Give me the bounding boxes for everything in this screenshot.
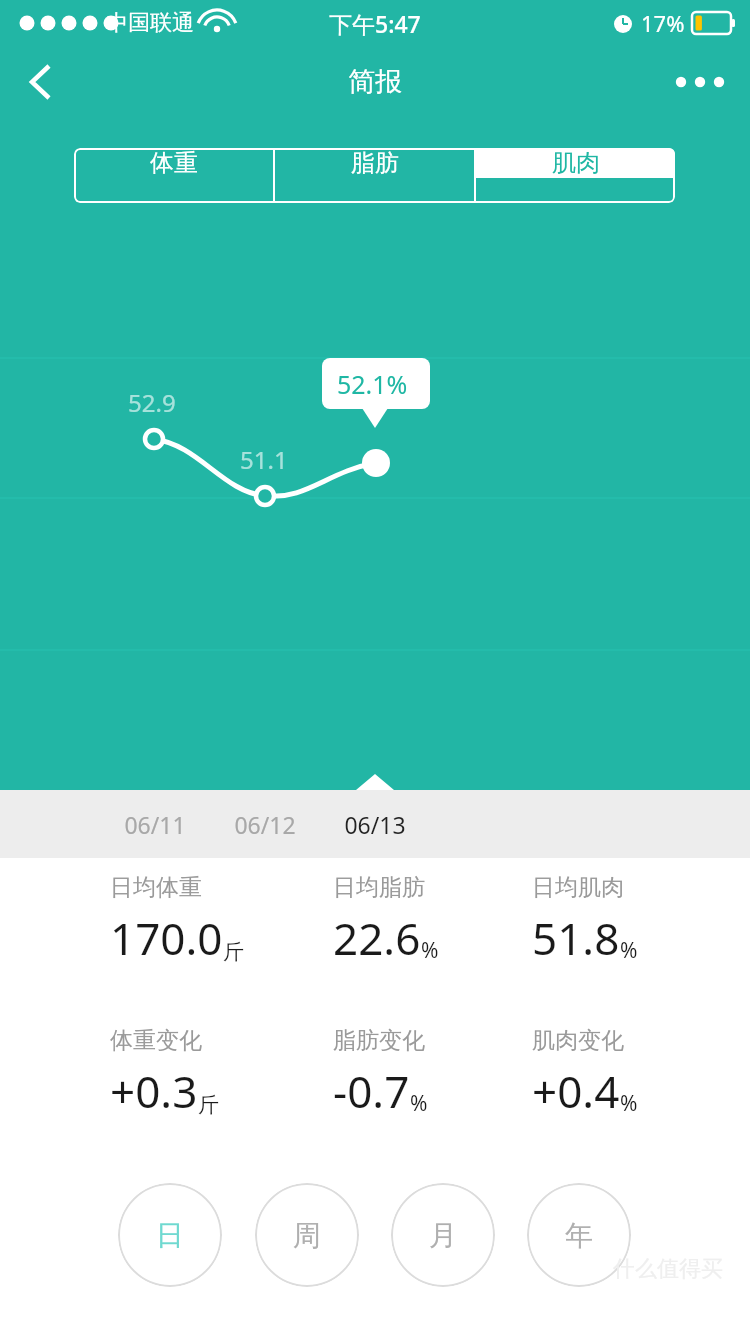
- staticText: %: [620, 1089, 638, 1118]
- staticText: 51.8: [532, 908, 620, 968]
- button[interactable]: 年: [527, 1183, 631, 1287]
- staticText: 17%: [641, 8, 685, 38]
- staticText: 06/12: [234, 809, 296, 840]
- staticText: 斤: [223, 939, 244, 965]
- staticText: 下午5:47: [329, 8, 421, 39]
- staticText: %: [421, 936, 439, 965]
- staticText: 日均体重: [110, 873, 202, 902]
- staticText: 体重变化: [110, 1026, 202, 1055]
- staticText: 脂肪: [351, 148, 399, 178]
- staticText: 什么值得买: [613, 1255, 723, 1283]
- staticText: 斤: [198, 1092, 219, 1118]
- button[interactable]: 06/12: [210, 796, 320, 852]
- staticText: -0.7: [333, 1061, 410, 1121]
- staticText: 170.0: [110, 908, 223, 968]
- staticText: 体重: [150, 148, 198, 178]
- staticText: 年: [565, 1218, 593, 1253]
- staticText: %: [410, 1089, 428, 1118]
- staticText: 06/13: [344, 809, 406, 840]
- button[interactable]: Back: [8, 50, 72, 114]
- staticText: 简报: [348, 65, 402, 99]
- button[interactable]: 周: [255, 1183, 359, 1287]
- button[interactable]: 肌肉: [476, 148, 675, 178]
- button[interactable]: 脂肪: [275, 148, 474, 178]
- staticText: 日均肌肉: [532, 873, 624, 902]
- button[interactable]: More options: [672, 54, 728, 110]
- staticText: 肌肉: [552, 148, 600, 178]
- staticText: 52.9: [128, 386, 176, 419]
- staticText: 22.6: [333, 908, 421, 968]
- button[interactable]: 日: [118, 1183, 222, 1287]
- staticText: +0.4: [532, 1061, 620, 1121]
- staticText: 中国联通: [106, 9, 194, 37]
- staticText: 周: [293, 1218, 321, 1253]
- staticText: 51.1: [240, 443, 288, 476]
- staticText: %: [620, 936, 638, 965]
- staticText: 肌肉变化: [532, 1026, 624, 1055]
- staticText: 日均脂肪: [333, 873, 425, 902]
- staticText: +0.3: [110, 1061, 198, 1121]
- button[interactable]: 体重: [74, 148, 273, 178]
- staticText: 日: [156, 1218, 184, 1253]
- staticText: 06/11: [124, 809, 186, 840]
- button[interactable]: 月: [391, 1183, 495, 1287]
- staticText: 月: [429, 1218, 457, 1253]
- staticText: 52.1%: [337, 367, 408, 401]
- button[interactable]: 06/11: [100, 796, 210, 852]
- button[interactable]: 06/13: [320, 796, 430, 852]
- staticText: 脂肪变化: [333, 1026, 425, 1055]
